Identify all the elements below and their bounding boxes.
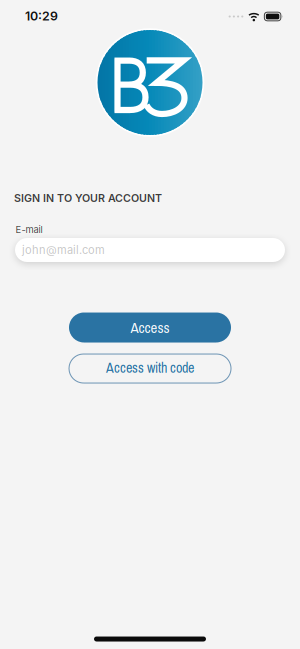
staticText: Access <box>130 317 169 337</box>
staticText: john@mail.com <box>22 243 105 257</box>
button[interactable]: E-mail <box>15 238 285 262</box>
staticText: Access with code <box>106 358 194 377</box>
staticText: 10:29 <box>25 8 58 23</box>
button[interactable]: Access <box>69 312 231 342</box>
staticText: E-mail <box>15 224 42 235</box>
staticText: SIGN IN TO YOUR ACCOUNT <box>14 191 162 204</box>
button[interactable]: Access with code <box>69 354 231 383</box>
